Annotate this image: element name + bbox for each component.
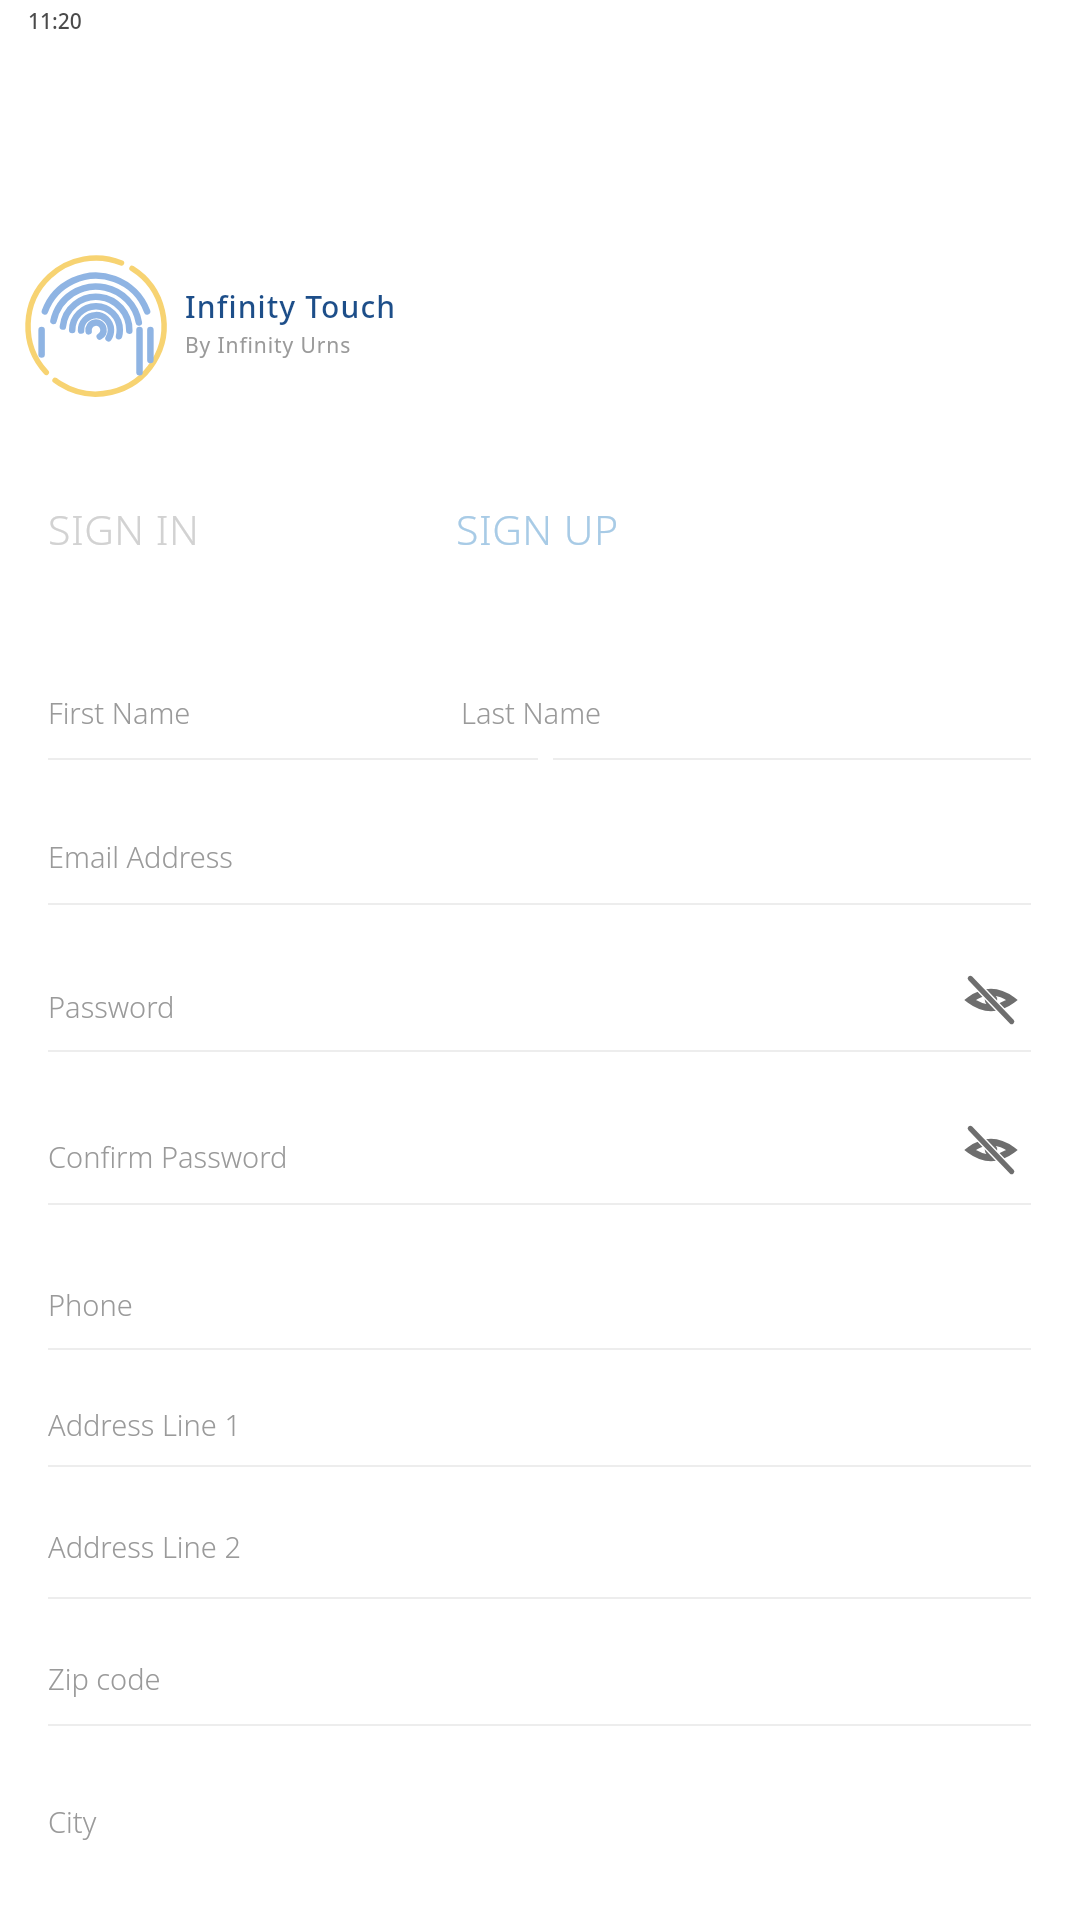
button[interactable]: Email Address <box>40 808 1040 904</box>
button[interactable]: Show password <box>955 964 1027 1036</box>
button[interactable]: Phone <box>40 1256 1040 1352</box>
staticText: SIGN IN <box>48 501 200 557</box>
button[interactable]: Address Line 2 <box>40 1498 1040 1594</box>
staticText: Address Line 1 <box>48 1405 241 1444</box>
staticText: SIGN UP <box>456 501 619 557</box>
staticText: Last Name <box>461 693 602 732</box>
button[interactable]: SIGN IN <box>0 492 410 566</box>
button[interactable]: City <box>40 1773 1040 1869</box>
staticText: Address Line 2 <box>48 1527 241 1566</box>
staticText: Password <box>48 987 175 1026</box>
staticText: Email Address <box>48 837 233 876</box>
button[interactable]: SIGN UP <box>410 492 830 566</box>
button[interactable]: Zip code <box>40 1630 1040 1726</box>
button[interactable]: Address Line 1 <box>40 1376 1040 1472</box>
button[interactable]: Show password <box>955 1114 1027 1186</box>
staticText: City <box>48 1802 97 1841</box>
staticText: Confirm Password <box>48 1137 288 1176</box>
staticText: Zip code <box>48 1659 161 1698</box>
button[interactable]: First Name <box>40 664 540 760</box>
staticText: First Name <box>48 693 191 732</box>
staticText: 11:20 <box>28 7 82 36</box>
button[interactable]: Password <box>40 958 1040 1054</box>
staticText: By Infinity Urns <box>185 331 352 360</box>
button[interactable]: Last Name <box>453 664 1033 760</box>
staticText: Infinity Touch <box>185 286 397 327</box>
button[interactable]: Confirm Password <box>40 1108 1040 1204</box>
staticText: Phone <box>48 1285 133 1324</box>
